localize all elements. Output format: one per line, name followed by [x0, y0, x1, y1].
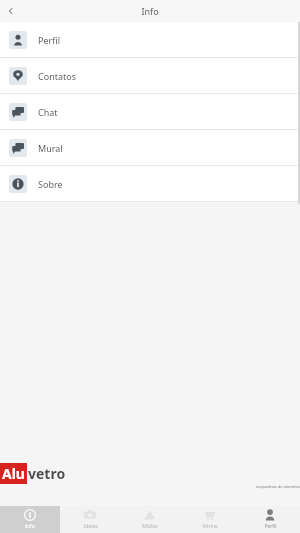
staticText: Ideias [83, 523, 98, 530]
staticText: Info [141, 5, 159, 17]
staticText: Vitrine [202, 523, 218, 530]
staticText: Mídias [142, 523, 158, 530]
staticText: esquadrias de alumínio [0, 484, 300, 489]
button[interactable]: Sobre [0, 166, 300, 201]
button[interactable]: Chat [0, 94, 300, 129]
button[interactable]: Info [0, 506, 60, 533]
button[interactable]: Vitrine [180, 506, 240, 533]
staticText: Chat [38, 106, 58, 118]
button[interactable]: Perfil [240, 506, 300, 533]
staticText: vetro [28, 464, 66, 483]
staticText: Perfil [264, 523, 277, 530]
button[interactable]: Back [0, 0, 22, 22]
button[interactable]: Ideias [60, 506, 120, 533]
staticText: Perfil [38, 34, 60, 46]
staticText: Contatos [38, 70, 76, 82]
staticText: Info [25, 523, 35, 530]
button[interactable]: Contatos [0, 58, 300, 93]
button[interactable]: Mural [0, 130, 300, 165]
staticText: Alu [2, 464, 25, 483]
staticText: Mural [38, 142, 63, 154]
staticText: Sobre [38, 178, 63, 190]
button[interactable]: Perfil [0, 22, 300, 57]
button[interactable]: Mídias [120, 506, 180, 533]
